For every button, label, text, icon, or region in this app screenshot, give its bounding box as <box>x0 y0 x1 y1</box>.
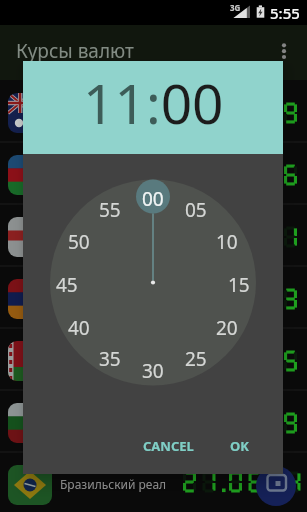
staticText: 25 <box>185 346 207 368</box>
staticText: Бразильский реал <box>60 476 167 492</box>
staticText: CANCEL <box>143 437 194 455</box>
staticText: Курсы валют <box>16 38 134 64</box>
staticText: 3G <box>230 2 241 13</box>
staticText: 10 <box>216 229 238 251</box>
staticText: OK <box>230 437 249 455</box>
staticText: 30 <box>142 358 164 380</box>
button[interactable] <box>0 142 307 204</box>
button[interactable]: CANCEL <box>133 432 203 460</box>
button[interactable] <box>272 33 296 73</box>
staticText: 45 <box>56 272 78 294</box>
staticText: 00 <box>142 186 164 208</box>
staticText: 35 <box>99 346 121 368</box>
staticText: 55 <box>99 197 121 219</box>
button[interactable] <box>0 204 307 266</box>
button[interactable] <box>0 452 307 512</box>
staticText: 20 <box>216 315 238 337</box>
staticText: 11:00 <box>83 65 224 140</box>
staticText: 05 <box>185 197 207 219</box>
staticText: 50 <box>68 229 90 251</box>
button[interactable] <box>0 328 307 390</box>
button[interactable] <box>0 390 307 452</box>
button[interactable] <box>256 466 296 506</box>
staticText: 5:55 <box>270 3 300 23</box>
button[interactable]: OK <box>213 432 265 460</box>
staticText: 40 <box>68 315 90 337</box>
staticText: 15 <box>228 272 250 294</box>
button[interactable] <box>0 80 307 142</box>
button[interactable] <box>0 266 307 328</box>
